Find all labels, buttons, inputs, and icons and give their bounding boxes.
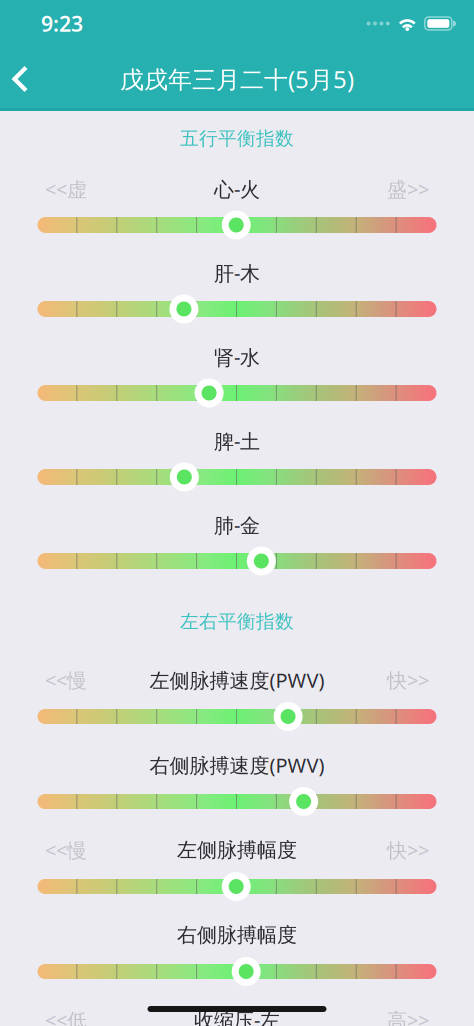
staticText: 右侧脉搏速度(PWV) [149, 752, 324, 778]
staticText: 高>> [387, 1007, 429, 1026]
staticText: 9:23 [41, 9, 83, 38]
staticText: 五行平衡指数 [180, 127, 294, 150]
staticText: 左侧脉搏速度(PWV) [149, 667, 324, 693]
staticText: <<虚 [45, 176, 87, 202]
staticText: 快>> [387, 667, 429, 693]
staticText: 脾-土 [214, 428, 260, 454]
staticText: <<低 [45, 1007, 87, 1026]
staticText: 收缩压-左 [194, 1007, 280, 1026]
staticText: 肝-木 [214, 260, 260, 286]
staticText: 肾-水 [214, 344, 260, 370]
staticText: 左侧脉搏幅度 [177, 838, 297, 862]
staticText: <<慢 [45, 667, 87, 693]
staticText: 戊戌年三月二十(5月5) [120, 63, 354, 95]
staticText: 左右平衡指数 [180, 610, 294, 633]
staticText: 肺-金 [214, 512, 260, 538]
staticText: 心-火 [214, 176, 260, 202]
staticText: 盛>> [387, 176, 429, 202]
button[interactable]: Back [0, 56, 42, 101]
staticText: 快>> [387, 837, 429, 863]
staticText: <<慢 [45, 837, 87, 863]
staticText: 右侧脉搏幅度 [177, 923, 297, 947]
